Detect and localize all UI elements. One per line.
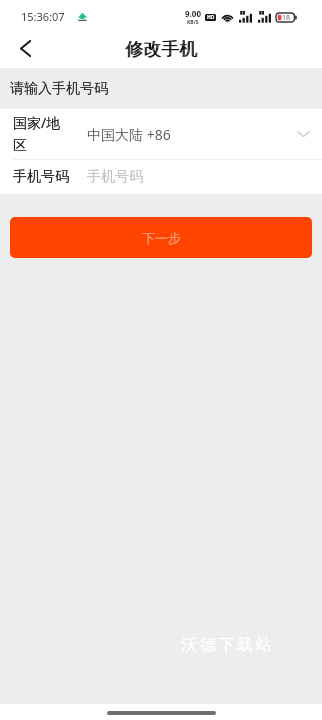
- staticText: 修改手机: [126, 38, 198, 61]
- staticText: HD: [207, 14, 215, 21]
- staticText: 修改手机: [125, 38, 197, 61]
- button[interactable]: Back: [0, 29, 46, 68]
- staticText: 手机号码: [87, 168, 143, 186]
- staticText: 18: [282, 13, 291, 22]
- button[interactable]: 国家/地区: [0, 109, 322, 159]
- staticText: 请输入手机号码: [10, 80, 108, 98]
- staticText: 下一步: [142, 230, 181, 246]
- staticText: 沃德下载站: [180, 635, 273, 655]
- button[interactable]: 手机号码: [0, 160, 322, 194]
- staticText: 国家/地区: [13, 113, 73, 155]
- staticText: 国家/地区: [13, 113, 73, 155]
- staticText: 请输入手机号码: [10, 80, 108, 98]
- staticText: 15:36:07: [21, 9, 65, 24]
- staticText: 手机号码: [13, 168, 69, 186]
- staticText: KB/S: [187, 19, 199, 26]
- button[interactable]: 下一步: [10, 217, 312, 258]
- staticText: 中国大陆 +86: [87, 125, 171, 144]
- staticText: 9.00: [185, 8, 201, 19]
- staticText: 手机号码: [13, 168, 69, 186]
